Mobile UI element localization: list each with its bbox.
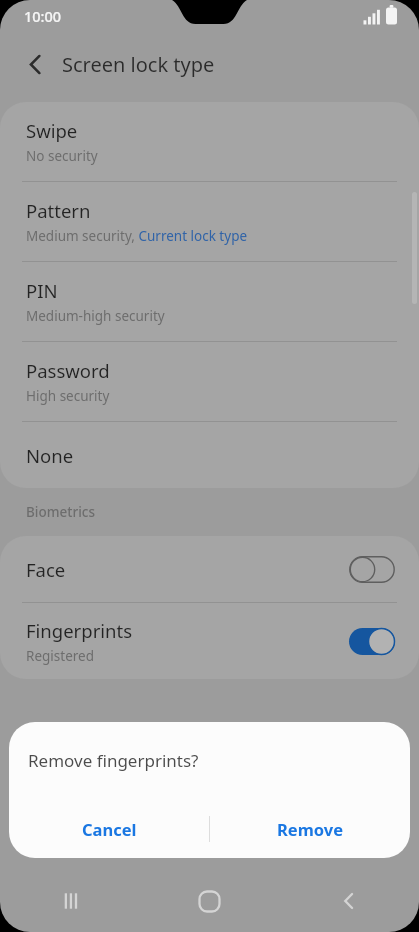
staticText: None — [26, 443, 74, 468]
button[interactable]: Password — [0, 342, 419, 422]
button[interactable]: Face off — [349, 556, 395, 583]
staticText: Biometrics — [26, 503, 95, 521]
staticText: PIN — [26, 278, 58, 303]
button[interactable]: Recent apps — [0, 870, 139, 932]
staticText: Fingerprints — [26, 618, 133, 643]
button[interactable]: Remove — [210, 799, 410, 858]
staticText: Remove — [277, 818, 344, 840]
staticText: Screen lock type — [62, 51, 215, 78]
staticText: Medium-high security — [26, 307, 165, 325]
staticText: Swipe — [26, 118, 78, 143]
button[interactable]: Swipe — [0, 102, 419, 182]
staticText: High security — [26, 387, 110, 405]
button[interactable]: Back — [12, 41, 58, 87]
button[interactable]: Face — [0, 536, 419, 603]
staticText: Medium security, Current lock type — [26, 227, 248, 245]
staticText: Face — [26, 557, 66, 582]
button[interactable]: Back — [279, 870, 419, 932]
staticText: 10:00 — [24, 6, 62, 26]
button[interactable]: Cancel — [9, 799, 209, 858]
button[interactable]: Home — [139, 870, 279, 932]
button[interactable]: Pattern — [0, 182, 419, 262]
staticText: Password — [26, 358, 110, 383]
staticText: Pattern — [26, 198, 91, 223]
button[interactable]: Fingerprints — [0, 603, 419, 679]
staticText: Registered — [26, 647, 94, 665]
button[interactable]: PIN — [0, 262, 419, 342]
staticText: No security — [26, 147, 98, 165]
staticText: Cancel — [82, 818, 137, 840]
button[interactable]: None — [0, 422, 419, 488]
staticText: Remove fingerprints? — [28, 749, 199, 772]
button[interactable]: Fingerprints on — [349, 628, 395, 655]
